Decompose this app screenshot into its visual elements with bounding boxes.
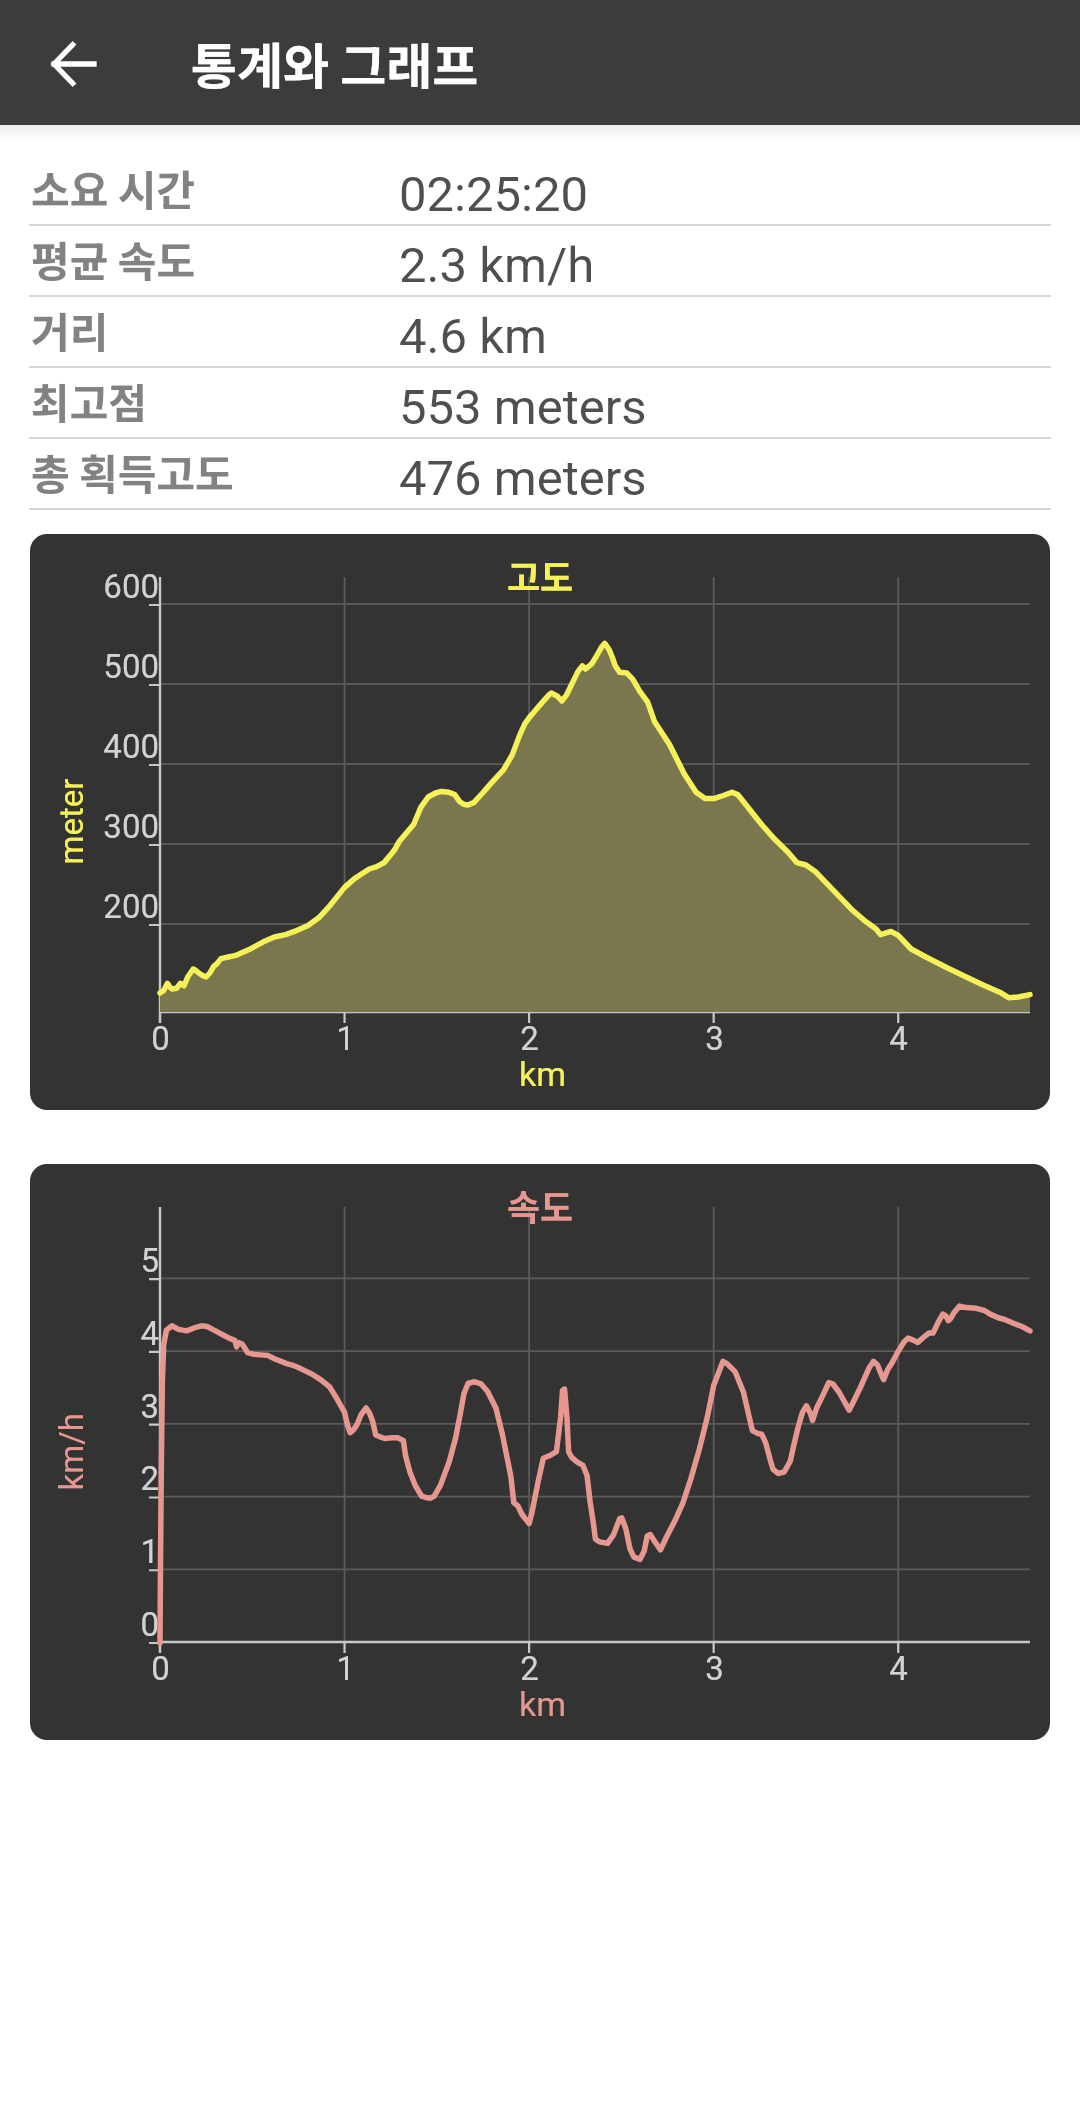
staticText: 553 meters — [399, 379, 647, 436]
staticText: 총 획득고도 — [31, 441, 234, 502]
button[interactable]: 소요 시간 — [0, 155, 1080, 224]
staticText: 200 — [103, 887, 159, 926]
staticText: 평균 속도 — [31, 228, 196, 289]
staticText: km — [519, 1684, 567, 1724]
staticText: 4 — [140, 1314, 159, 1353]
staticText: 500 — [103, 647, 159, 686]
staticText: 2.3 km/h — [399, 237, 595, 294]
staticText: meter — [51, 778, 90, 864]
staticText: 3 — [140, 1387, 159, 1426]
staticText: 476 meters — [399, 450, 647, 507]
staticText: 2 — [520, 1649, 539, 1688]
staticText: 4.6 km — [399, 308, 547, 365]
staticText: 0 — [151, 1019, 170, 1058]
staticText: km — [519, 1054, 567, 1094]
staticText: 1 — [336, 1649, 355, 1688]
staticText: 300 — [103, 807, 159, 846]
staticText: 최고점 — [31, 370, 147, 431]
staticText: 600 — [103, 567, 159, 606]
button[interactable]: 총 획득고도 — [0, 439, 1080, 508]
staticText: 속도 — [507, 1179, 574, 1231]
staticText: 2 — [520, 1019, 539, 1058]
staticText: 1 — [140, 1532, 159, 1571]
staticText: 고도 — [507, 549, 574, 601]
button[interactable]: 최고점 — [0, 368, 1080, 437]
staticText: 거리 — [31, 299, 109, 360]
staticText: 400 — [103, 727, 159, 766]
staticText: 4 — [889, 1019, 908, 1058]
staticText: 3 — [705, 1019, 724, 1058]
staticText: 3 — [705, 1649, 724, 1688]
staticText: 소요 시간 — [31, 157, 196, 218]
staticText: 0 — [140, 1605, 159, 1644]
staticText: 0 — [151, 1649, 170, 1688]
button[interactable]: 평균 속도 — [0, 226, 1080, 295]
staticText: 02:25:20 — [399, 166, 588, 223]
button[interactable]: Back — [0, 0, 147, 125]
staticText: 5 — [140, 1241, 159, 1280]
staticText: 1 — [336, 1019, 355, 1058]
button[interactable]: 거리 — [0, 297, 1080, 366]
staticText: 4 — [889, 1649, 908, 1688]
staticText: 2 — [140, 1459, 159, 1498]
staticText: 통계와 그래프 — [191, 27, 479, 99]
staticText: km/h — [51, 1412, 90, 1490]
